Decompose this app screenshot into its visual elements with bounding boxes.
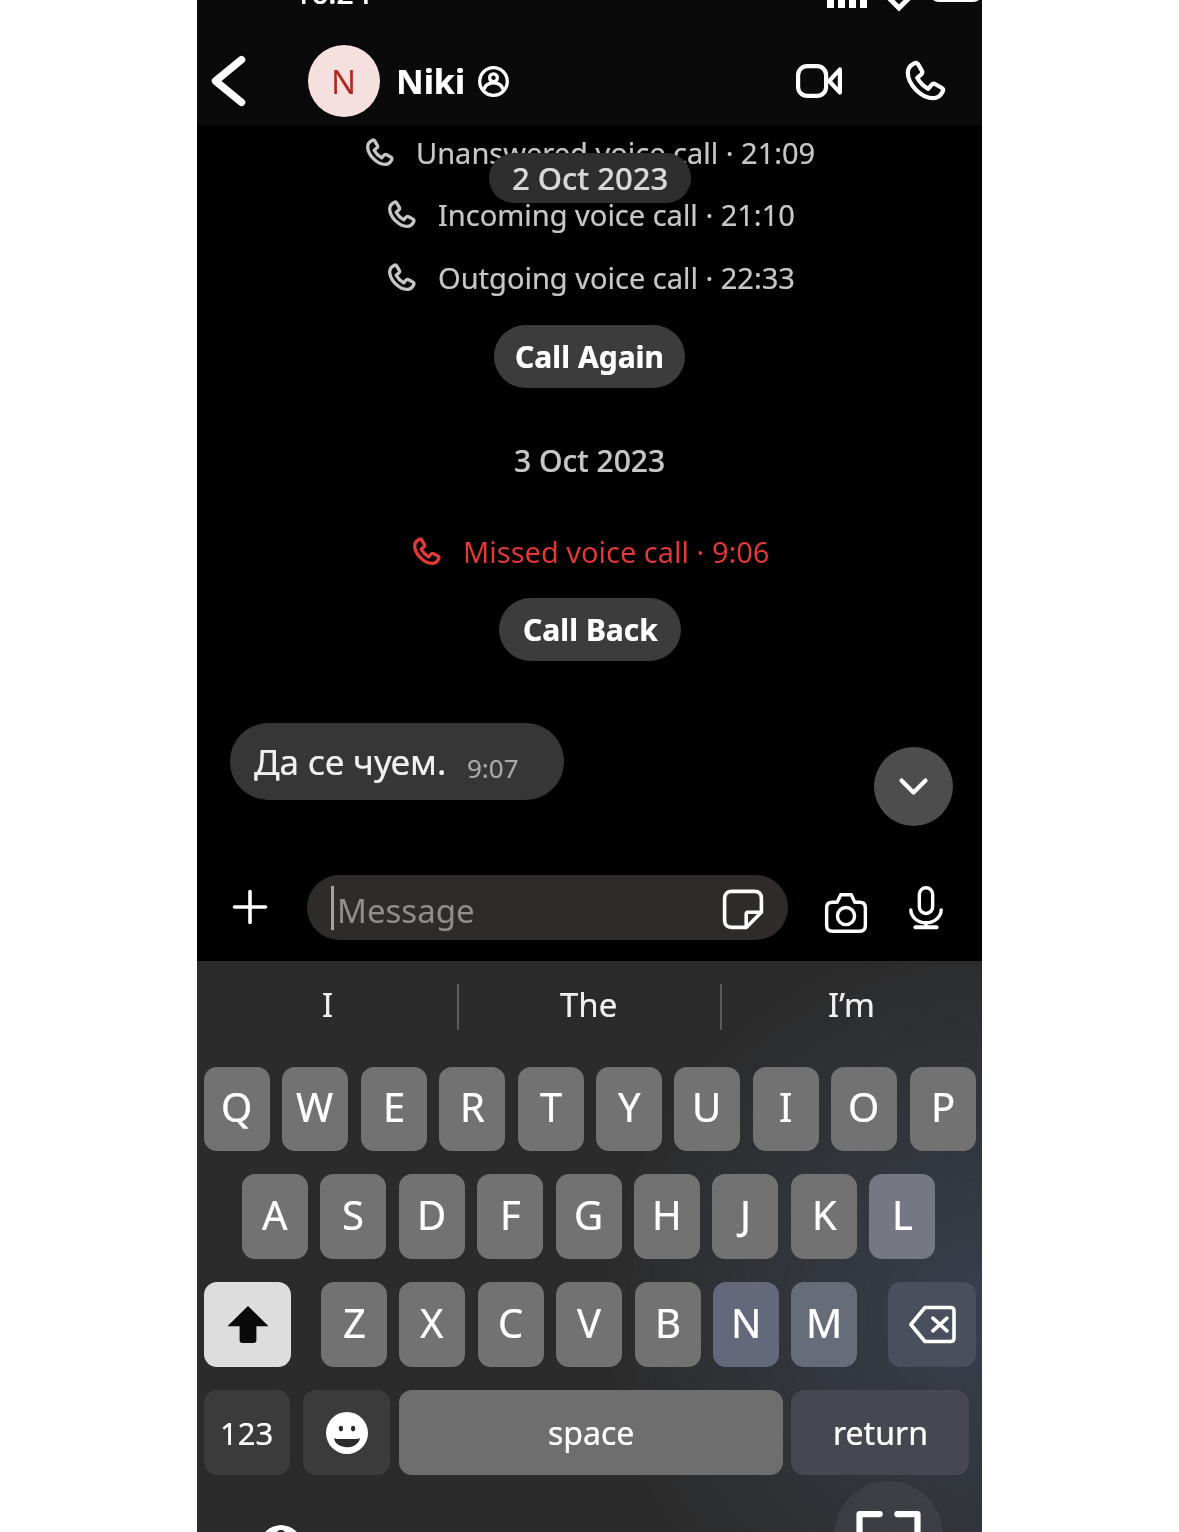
staticText: I xyxy=(322,982,334,1027)
button[interactable]: Call Back xyxy=(499,598,681,661)
button[interactable]: L xyxy=(869,1174,935,1259)
staticText: N xyxy=(331,59,357,104)
button[interactable]: Niki xyxy=(396,48,509,114)
button[interactable]: I’m xyxy=(720,961,982,1055)
staticText: The xyxy=(560,982,618,1027)
staticText: G xyxy=(574,1187,604,1241)
button[interactable]: F xyxy=(477,1174,543,1259)
button[interactable]: Shift xyxy=(204,1282,291,1367)
staticText: Да се чуем. xyxy=(254,738,447,786)
staticText: V xyxy=(577,1295,601,1349)
staticText: space xyxy=(548,1411,635,1455)
other: Backspace xyxy=(910,1306,954,1343)
button[interactable]: Attach xyxy=(210,867,290,947)
button[interactable]: A xyxy=(242,1174,308,1259)
staticText: Q xyxy=(221,1079,253,1133)
staticText: 123 xyxy=(220,1412,274,1454)
button[interactable]: Q xyxy=(204,1067,270,1151)
button[interactable]: V xyxy=(556,1282,622,1367)
button[interactable]: Voice call xyxy=(881,37,969,125)
staticText: 2 Oct 2023 xyxy=(512,157,669,199)
staticText: return xyxy=(833,1411,928,1455)
staticText: D xyxy=(417,1187,447,1241)
button[interactable]: space xyxy=(399,1390,783,1475)
staticText: Call Back xyxy=(523,609,658,650)
button[interactable]: Z xyxy=(321,1282,387,1367)
staticText: P xyxy=(931,1079,956,1133)
button[interactable]: 123 xyxy=(204,1390,290,1475)
button[interactable]: Emoji xyxy=(303,1390,390,1475)
staticText: Niki xyxy=(396,58,466,104)
button[interactable]: I xyxy=(753,1067,819,1151)
button[interactable]: 2 Oct 2023 xyxy=(489,153,691,203)
button[interactable]: Camera xyxy=(806,871,886,951)
button[interactable]: The xyxy=(458,961,720,1055)
button[interactable]: O xyxy=(831,1067,897,1151)
staticText: Y xyxy=(618,1079,641,1133)
staticText: Unanswered voice call · 21:09 xyxy=(416,133,816,172)
button[interactable]: S xyxy=(320,1174,386,1259)
button[interactable]: Voice message xyxy=(886,868,966,948)
button[interactable]: M xyxy=(791,1282,857,1367)
staticText: Message xyxy=(337,888,475,933)
staticText: N xyxy=(731,1295,762,1349)
button[interactable]: N xyxy=(713,1282,779,1367)
staticText: 3 Oct 2023 xyxy=(514,440,666,481)
staticText: Missed voice call · 9:06 xyxy=(463,532,770,571)
button[interactable]: G xyxy=(556,1174,622,1259)
button[interactable]: X xyxy=(399,1282,465,1367)
button[interactable]: D xyxy=(399,1174,465,1259)
button[interactable]: Scroll to bottom xyxy=(874,747,953,826)
button[interactable]: I xyxy=(197,961,458,1055)
button[interactable]: return xyxy=(791,1390,969,1475)
button[interactable]: W xyxy=(282,1067,348,1151)
button[interactable]: E xyxy=(361,1067,427,1151)
staticText: O xyxy=(848,1079,880,1133)
button[interactable]: Stickers xyxy=(713,879,773,939)
button[interactable]: C xyxy=(478,1282,544,1367)
button[interactable]: R xyxy=(439,1067,505,1151)
button[interactable]: H xyxy=(634,1174,700,1259)
staticText: L xyxy=(892,1187,913,1241)
button[interactable]: B xyxy=(635,1282,701,1367)
staticText: Outgoing voice call · 22:33 xyxy=(438,258,795,297)
other: Emoji xyxy=(326,1412,368,1454)
staticText: Call Again xyxy=(515,336,665,377)
button[interactable]: Message xyxy=(307,875,788,940)
button[interactable]: Switch language xyxy=(257,1523,305,1532)
staticText: R xyxy=(460,1079,485,1133)
staticText: Incoming voice call · 21:10 xyxy=(438,195,795,234)
button[interactable]: Да се чуем. xyxy=(230,723,564,800)
staticText: J xyxy=(740,1187,751,1241)
button[interactable]: K xyxy=(791,1174,857,1259)
other: Shift xyxy=(227,1306,269,1343)
button[interactable]: J xyxy=(712,1174,778,1259)
staticText: F xyxy=(500,1187,521,1241)
staticText: W xyxy=(296,1079,334,1133)
staticText: I’m xyxy=(828,982,875,1027)
staticText: B xyxy=(655,1295,681,1349)
staticText: U xyxy=(692,1079,722,1133)
button[interactable]: P xyxy=(910,1067,976,1151)
staticText: 16:24 xyxy=(294,0,371,13)
staticText: Z xyxy=(343,1295,366,1349)
staticText: T xyxy=(540,1079,563,1133)
staticText: E xyxy=(383,1079,406,1133)
staticText: X xyxy=(420,1295,444,1349)
staticText: M xyxy=(806,1295,843,1349)
staticText: S xyxy=(342,1187,364,1241)
button[interactable]: Back xyxy=(188,41,268,121)
staticText: K xyxy=(812,1187,837,1241)
button[interactable]: N xyxy=(308,45,380,117)
button[interactable]: Backspace xyxy=(888,1282,976,1367)
button[interactable]: Call Again xyxy=(494,325,685,388)
staticText: 9:07 xyxy=(467,750,519,785)
button[interactable]: Hide keyboard xyxy=(834,1481,943,1532)
staticText: A xyxy=(262,1187,288,1241)
staticText: H xyxy=(652,1187,682,1241)
staticText: I xyxy=(779,1079,793,1133)
button[interactable]: Y xyxy=(596,1067,662,1151)
button[interactable]: T xyxy=(518,1067,584,1151)
button[interactable]: Video call xyxy=(775,37,863,125)
button[interactable]: U xyxy=(674,1067,740,1151)
